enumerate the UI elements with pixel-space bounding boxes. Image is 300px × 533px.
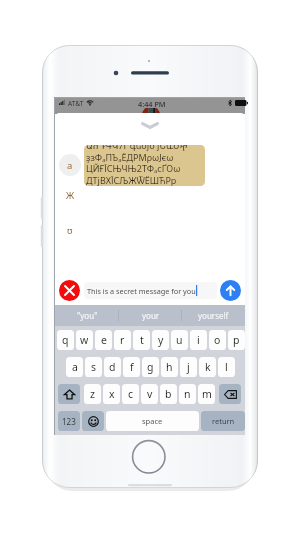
button[interactable]: m <box>198 384 215 404</box>
button[interactable]: s <box>85 357 102 377</box>
staticText: l <box>225 360 228 374</box>
staticText: "you" <box>77 310 98 321</box>
staticText: Ж <box>66 189 75 201</box>
staticText: u <box>176 333 183 347</box>
staticText: y <box>158 333 164 347</box>
button[interactable]: ԱሰԴԳԿ7Րգեօյօ ʃԵևԺⴕ <box>84 145 205 186</box>
button[interactable]: Send <box>220 280 241 301</box>
staticText: 4:44 PM <box>138 99 166 109</box>
staticText: r <box>120 333 125 347</box>
button[interactable]: g <box>142 357 159 377</box>
staticText: n <box>184 387 191 401</box>
staticText: space <box>142 416 163 426</box>
staticText: This is a secret message for you <box>87 286 196 296</box>
button[interactable]: n <box>179 384 196 404</box>
button[interactable]: d <box>104 357 121 377</box>
button[interactable]: This is a secret message for you <box>84 282 217 299</box>
staticText: AT&T <box>68 99 84 108</box>
button[interactable]: p <box>228 330 245 350</box>
staticText: return <box>212 416 235 426</box>
button[interactable]: "you" <box>55 305 119 326</box>
button[interactable]: z <box>84 384 101 404</box>
button[interactable]: Sender avatar <box>59 154 81 176</box>
staticText: ʊ <box>67 224 73 236</box>
button[interactable]: emoji <box>82 411 104 431</box>
button[interactable]: b <box>160 384 177 404</box>
button[interactable]: k <box>199 357 216 377</box>
staticText: k <box>205 360 211 374</box>
staticText: s <box>91 360 97 374</box>
staticText: a <box>67 159 73 172</box>
staticText: a <box>72 360 78 374</box>
button[interactable]: j <box>180 357 197 377</box>
staticText: x <box>109 387 115 401</box>
button[interactable]: x <box>103 384 120 404</box>
button[interactable]: h <box>161 357 178 377</box>
button[interactable]: c <box>122 384 139 404</box>
button[interactable]: u <box>171 330 188 350</box>
button[interactable]: w <box>76 330 93 350</box>
button[interactable]: y <box>152 330 169 350</box>
staticText: t <box>140 333 144 347</box>
staticText: z <box>90 387 95 401</box>
staticText: b <box>165 387 172 401</box>
staticText: ЦЙҒЇСЊЧЊ2ТФₐсҐОω <box>86 162 181 174</box>
staticText: c <box>128 387 134 401</box>
staticText: your <box>142 310 160 321</box>
staticText: h <box>166 360 173 374</box>
staticText: j <box>187 360 190 374</box>
button[interactable]: delete <box>219 384 241 404</box>
button[interactable]: Cancel <box>59 280 80 301</box>
button[interactable]: i <box>190 330 207 350</box>
button[interactable]: o <box>209 330 226 350</box>
staticText: ԱሰԴԳԿ7Րգեօյօ ʃԵևԺⴕ <box>86 145 188 151</box>
button[interactable]: l <box>218 357 235 377</box>
staticText: f <box>130 360 134 374</box>
staticText: e <box>101 333 107 347</box>
staticText: i <box>197 333 200 347</box>
button[interactable]: space <box>106 411 199 431</box>
button[interactable]: v <box>141 384 158 404</box>
button[interactable]: a <box>66 357 83 377</box>
staticText: p <box>233 333 240 347</box>
staticText: q <box>62 333 69 347</box>
staticText: yourself <box>198 310 229 321</box>
button[interactable]: return <box>201 411 245 431</box>
button[interactable]: t <box>133 330 150 350</box>
staticText: ДТјВХЇСЉЖѾЁШЋРр <box>86 174 177 186</box>
staticText: w <box>80 333 89 347</box>
staticText: d <box>109 360 116 374</box>
button[interactable]: yourself <box>182 305 245 326</box>
button[interactable]: r <box>114 330 131 350</box>
button[interactable]: your <box>119 305 182 326</box>
button[interactable]: e <box>95 330 112 350</box>
button[interactable]: q <box>57 330 74 350</box>
button[interactable]: shift <box>58 384 80 404</box>
staticText: o <box>214 333 221 347</box>
staticText: g <box>147 360 154 374</box>
staticText: v <box>147 387 153 401</box>
button[interactable]: 123 <box>58 411 80 431</box>
staticText: m <box>202 387 212 401</box>
staticText: ҙзФₐПЪₐЁДРМρωЈєω <box>86 151 174 163</box>
staticText: 123 <box>62 416 76 427</box>
button[interactable]: f <box>123 357 140 377</box>
